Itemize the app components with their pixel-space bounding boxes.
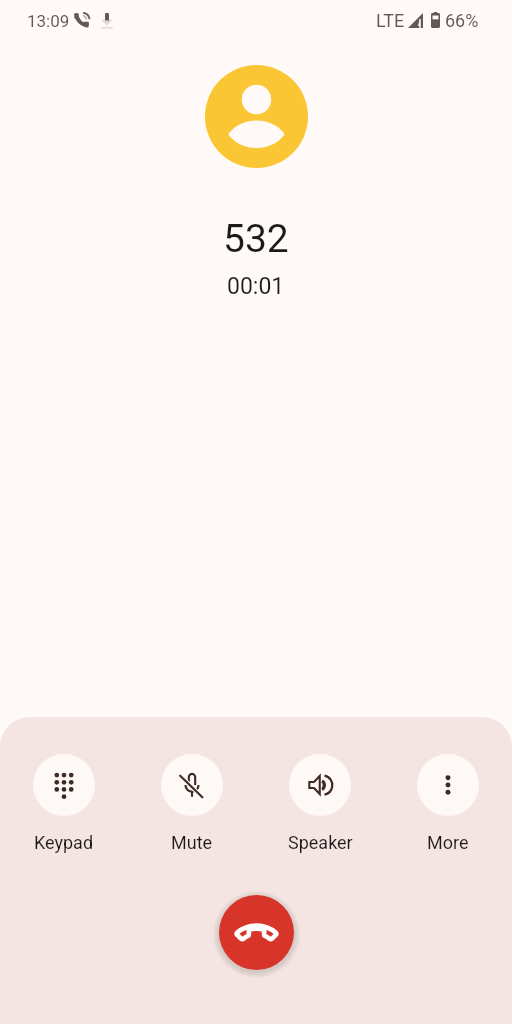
staticText: LTE xyxy=(376,10,405,31)
staticText: Keypad xyxy=(34,832,94,853)
staticText: More xyxy=(427,832,469,853)
button[interactable]: End call xyxy=(219,895,294,970)
staticText: 13:09 xyxy=(27,11,70,31)
button[interactable]: Keypad xyxy=(0,754,128,853)
button[interactable]: Mute xyxy=(128,754,256,853)
staticText: 00:01 xyxy=(227,273,285,300)
staticText: 66% xyxy=(445,10,479,31)
staticText: Speaker xyxy=(288,832,353,853)
button[interactable]: More xyxy=(384,754,512,853)
button[interactable]: Speaker xyxy=(256,754,384,853)
staticText: Mute xyxy=(171,832,213,853)
staticText: 532 xyxy=(223,216,289,262)
